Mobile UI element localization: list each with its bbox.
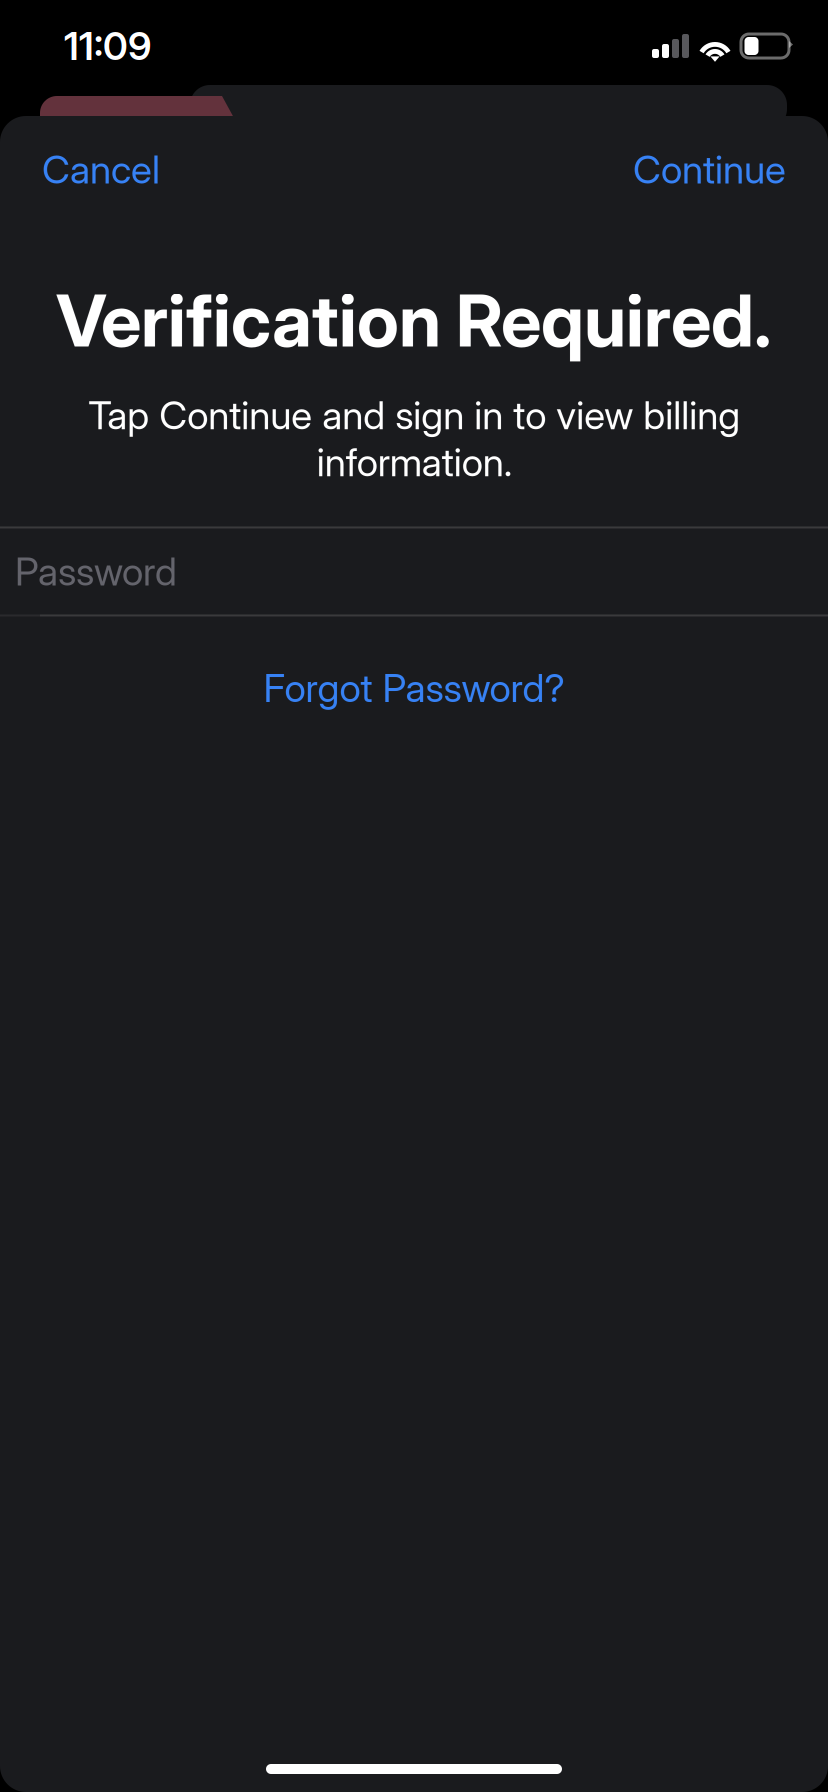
button[interactable]: Forgot Password?: [223, 646, 604, 729]
button[interactable]: Continue: [611, 130, 808, 209]
staticText: Forgot Password?: [263, 664, 564, 711]
button[interactable]: Cancel: [20, 130, 182, 209]
staticText: Password: [15, 548, 177, 595]
staticText: Verification Required.: [56, 277, 772, 364]
staticText: Tap Continue and sign in to view billing…: [88, 392, 740, 485]
staticText: Cancel: [42, 146, 160, 193]
staticText: Continue: [633, 146, 786, 193]
staticText: 11:09: [64, 23, 151, 69]
